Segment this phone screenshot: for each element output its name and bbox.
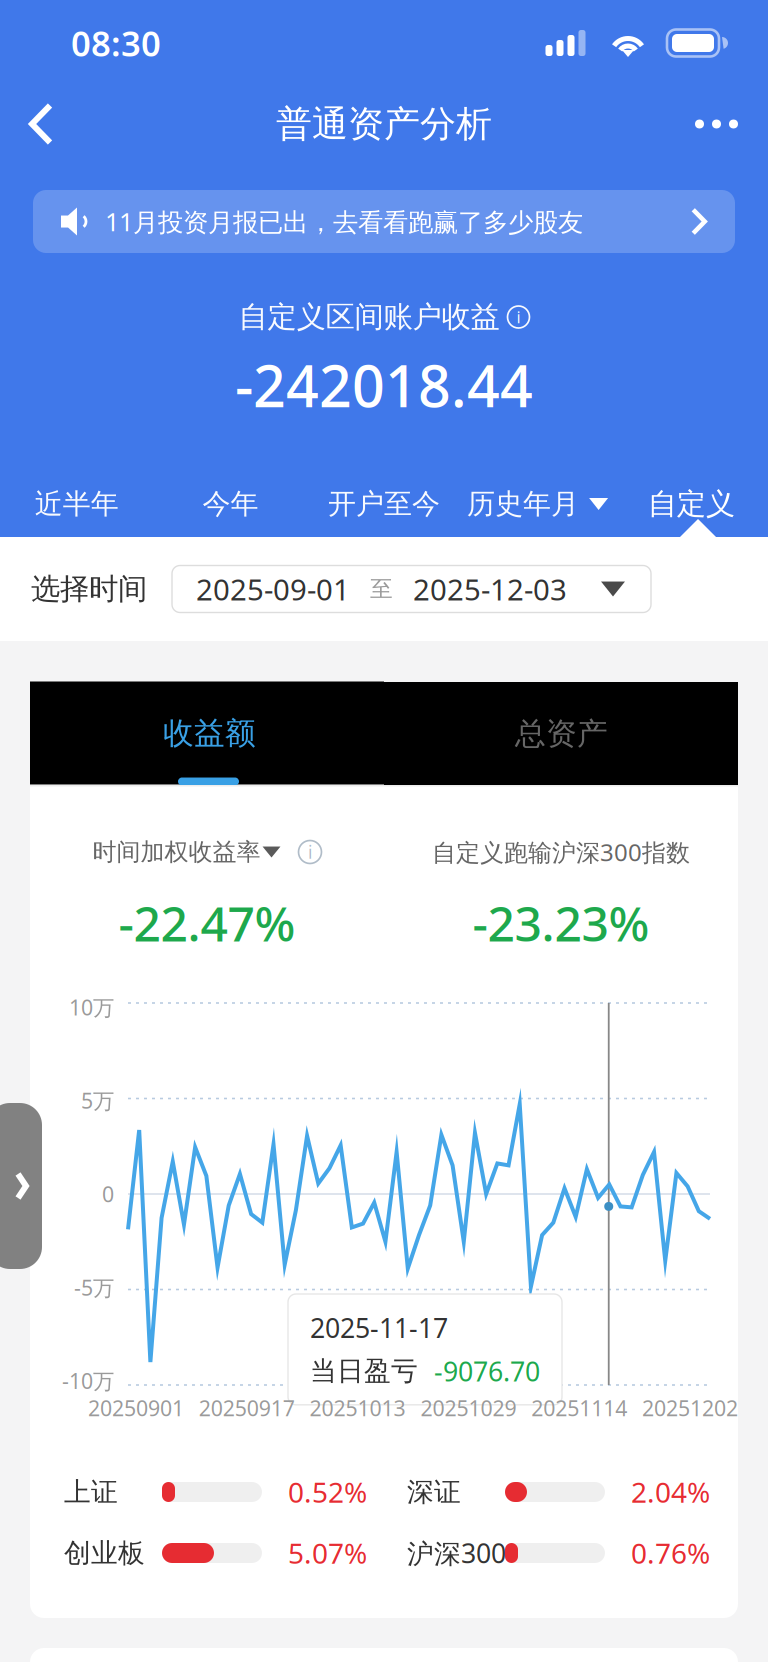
button[interactable]: 近半年 (0, 487, 154, 521)
staticText: 当日盈亏 (310, 1355, 418, 1387)
staticText: 今年 (202, 487, 258, 521)
staticText: 创业板 (64, 1537, 145, 1569)
staticText: 自定义 (648, 486, 735, 522)
staticText: 0.76% (631, 1534, 710, 1572)
staticText: -5万 (74, 1273, 114, 1302)
staticText: -23.23% (472, 891, 649, 955)
staticText: i (308, 840, 312, 863)
staticText: 2.04% (631, 1473, 710, 1511)
staticText: 总资产 (515, 715, 608, 753)
staticText: 2025-12-03 (413, 569, 567, 608)
button[interactable]: 2025-09-01 (172, 565, 651, 612)
staticText: 普通资产分析 (276, 102, 492, 146)
staticText: 时间加权收益率 (92, 837, 260, 867)
staticText: 上证 (64, 1476, 118, 1508)
button[interactable]: 自定义 (614, 486, 768, 522)
staticText: 20251013 (310, 1394, 406, 1422)
staticText: -10万 (62, 1367, 114, 1395)
staticText: 20250901 (88, 1394, 184, 1422)
staticText: 2025-09-01 (196, 569, 350, 608)
button[interactable]: 开户至今 (307, 487, 461, 521)
staticText: 至 (370, 575, 393, 603)
staticText: -22.47% (118, 891, 295, 955)
staticText: 2025-11-17 (310, 1310, 448, 1345)
staticText: 自定义区间账户收益 (238, 299, 499, 335)
staticText: 近半年 (35, 487, 119, 521)
staticText: 0 (102, 1180, 114, 1208)
staticText: 11月投资月报已出，去看看跑赢了多少股友 (105, 205, 583, 238)
button[interactable]: More options (665, 86, 768, 162)
staticText: 收益额 (163, 714, 256, 752)
staticText: 20251029 (420, 1394, 516, 1422)
staticText: 0.52% (288, 1473, 367, 1511)
button[interactable]: 今年 (154, 487, 307, 521)
staticText: 选择时间 (31, 571, 147, 607)
button[interactable]: 11月投资月报已出，去看看跑赢了多少股友 (33, 190, 735, 253)
staticText: 5万 (81, 1086, 114, 1115)
staticText: 开户至今 (328, 487, 440, 521)
staticText: -242018.44 (235, 347, 533, 423)
staticText: 历史年月 (467, 487, 579, 521)
staticText: 10万 (69, 993, 114, 1021)
staticText: 20251114 (531, 1394, 627, 1422)
staticText: 20251202 (642, 1394, 738, 1422)
staticText: i (516, 306, 520, 328)
button[interactable]: 历史年月 (461, 487, 614, 521)
staticText: 5.07% (288, 1534, 367, 1572)
button[interactable]: 收益额 (30, 682, 384, 785)
staticText: 深证 (407, 1476, 461, 1508)
button[interactable]: 总资产 (384, 682, 738, 785)
button[interactable]: Back (0, 86, 75, 162)
staticText: 08:30 (71, 20, 161, 66)
staticText: 自定义跑输沪深300指数 (432, 836, 690, 868)
staticText: 20250917 (199, 1394, 295, 1422)
button[interactable]: Expand side panel (0, 1103, 42, 1269)
staticText: -9076.70 (434, 1353, 540, 1389)
staticText: 沪深300 (407, 1535, 506, 1571)
